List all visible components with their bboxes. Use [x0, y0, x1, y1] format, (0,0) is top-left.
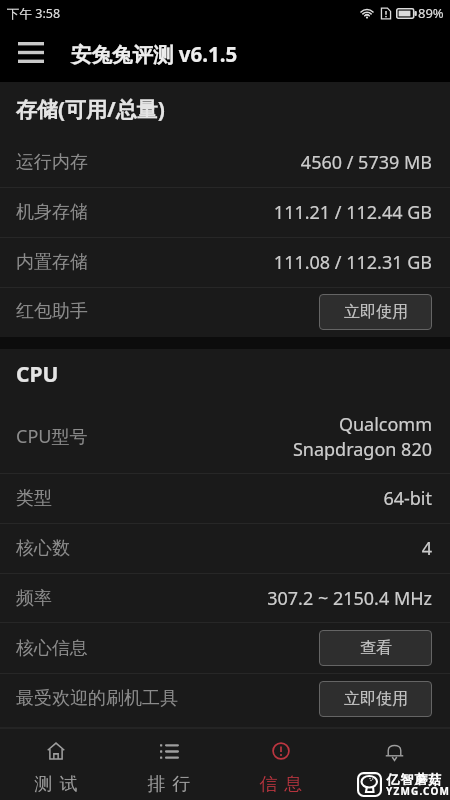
staticText: 核心数	[16, 537, 70, 560]
staticText: 最受欢迎的刷机工具	[16, 687, 178, 710]
staticText: 下午 3:58	[7, 5, 61, 22]
button[interactable]: 频率	[0, 574, 450, 622]
button[interactable]: CPU型号	[0, 400, 450, 473]
button[interactable]: 信息	[225, 727, 337, 800]
staticText: 111.21 / 112.44 GB	[273, 200, 432, 225]
staticText: 排行	[144, 773, 194, 796]
staticText: 信息	[256, 773, 306, 796]
staticText: 307.2 ~ 2150.4 MHz	[267, 586, 432, 611]
button[interactable]: 排行	[113, 727, 225, 800]
staticText: 89%	[418, 4, 444, 22]
staticText: 红包助手	[16, 300, 88, 323]
staticText: Qualcomm	[338, 412, 432, 437]
staticText: 存储(可用/总量)	[16, 95, 165, 124]
button[interactable]: 机身存储	[0, 188, 450, 237]
button[interactable]: 测试	[0, 727, 112, 800]
button[interactable]: 通知	[338, 727, 450, 800]
staticText: 类型	[16, 487, 52, 510]
button[interactable]: 核心数	[0, 524, 450, 573]
staticText: 64-bit	[383, 486, 432, 511]
button[interactable]: 查看	[319, 630, 432, 666]
staticText: 立即使用	[344, 689, 408, 709]
staticText: 运行内存	[16, 151, 88, 174]
staticText: 4	[421, 536, 432, 561]
staticText: YZMG.COM	[386, 784, 450, 798]
staticText: CPU型号	[16, 424, 88, 449]
staticText: 测试	[31, 773, 81, 796]
staticText: 频率	[16, 587, 52, 610]
staticText: Snapdragon 820	[292, 437, 432, 462]
staticText: 内置存储	[16, 251, 88, 274]
staticText: 4560 / 5739 MB	[300, 150, 432, 175]
button[interactable]: 类型	[0, 474, 450, 523]
staticText: 安兔兔评测 v6.1.5	[71, 40, 238, 68]
button[interactable]: 内置存储	[0, 238, 450, 287]
button[interactable]: 立即使用	[319, 681, 432, 717]
staticText: 核心信息	[16, 637, 88, 660]
staticText: 查看	[360, 638, 392, 658]
staticText: 机身存储	[16, 201, 88, 224]
staticText: 111.08 / 112.31 GB	[273, 250, 432, 275]
button[interactable]: 运行内存	[0, 137, 450, 187]
staticText: CPU	[16, 360, 59, 389]
staticText: 立即使用	[344, 302, 408, 322]
button[interactable]: 立即使用	[319, 294, 432, 330]
button[interactable]: Menu	[0, 26, 62, 82]
staticText: 亿智蘑菇	[386, 771, 442, 787]
